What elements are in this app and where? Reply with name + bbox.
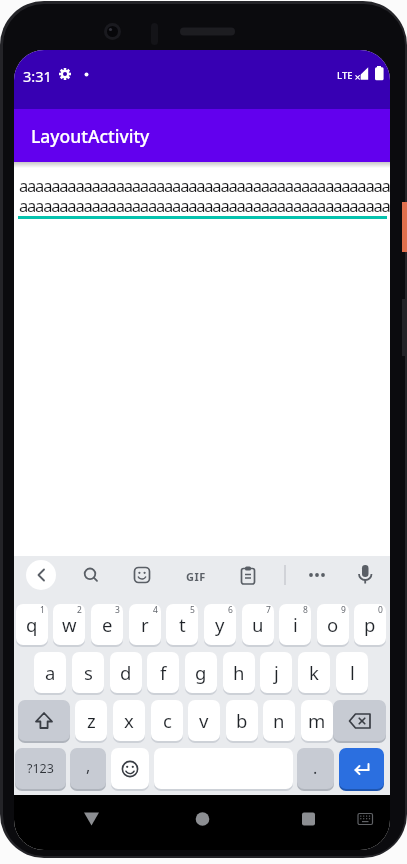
button[interactable]: , [70,748,106,789]
button[interactable]: b [226,700,258,741]
button[interactable]: u [242,604,274,645]
button[interactable] [73,801,109,837]
staticText: 3 [115,604,120,616]
button[interactable]: h [223,652,255,693]
staticText: r [141,612,149,637]
button[interactable] [14,162,390,272]
button[interactable]: f [147,652,179,693]
staticText: ?123 [27,760,54,777]
button[interactable] [290,801,326,837]
button[interactable]: . [297,748,334,789]
button[interactable]: ?123 [15,748,66,789]
button[interactable] [184,801,220,837]
button[interactable] [181,560,211,590]
staticText: 7 [266,604,271,616]
staticText: u [252,612,264,637]
staticText: 0 [378,604,383,616]
staticText: aaaaaaaaaaaaaaaaaaaaaaaaaaaaaaaaaaaaaaaa… [19,174,390,196]
staticText: w [62,612,77,637]
staticText: y [215,612,225,637]
staticText: 2 [77,604,82,616]
staticText: 3:31 [23,66,52,86]
staticText: m [308,708,326,733]
staticText: , [86,755,91,777]
button[interactable]: k [298,652,330,693]
button[interactable] [127,560,157,590]
staticText: c [163,708,172,733]
button[interactable]: q [16,604,48,645]
staticText: p [364,612,376,637]
staticText: i [293,612,298,637]
button[interactable]: d [110,652,142,693]
button[interactable] [333,700,386,741]
staticText: v [199,708,209,733]
button[interactable]: e [91,604,123,645]
staticText: b [236,708,248,733]
button[interactable]: g [185,652,217,693]
staticText: a [45,660,56,685]
button[interactable]: n [263,700,295,741]
button[interactable] [18,700,70,741]
staticText: q [26,612,38,637]
button[interactable]: o [317,604,349,645]
button[interactable]: y [204,604,236,645]
staticText: 4 [153,604,158,616]
staticText: d [120,660,132,685]
button[interactable]: l [336,652,368,693]
staticText: n [273,708,285,733]
button[interactable]: m [301,700,333,741]
button[interactable] [350,560,380,590]
staticText: aaaaaaaaaaaaaaaaaaaaaaaaaaaaaaaaaaaaaaaa… [19,194,390,216]
button[interactable] [302,560,332,590]
staticText: 6 [228,604,233,616]
button[interactable]: c [151,700,183,741]
button[interactable]: r [129,604,161,645]
staticText: 8 [303,604,308,616]
staticText: t [179,612,186,637]
button[interactable] [111,748,149,789]
button[interactable] [339,748,384,789]
staticText: 9 [341,604,346,616]
staticText: x [124,708,134,733]
button[interactable]: s [72,652,104,693]
button[interactable]: p [354,604,386,645]
staticText: z [87,708,96,733]
button[interactable] [76,560,106,590]
button[interactable]: t [166,604,198,645]
staticText: LayoutActivity [31,124,150,148]
staticText: f [160,660,167,685]
button[interactable]: i [279,604,311,645]
staticText: . [313,757,318,779]
button[interactable]: x [113,700,145,741]
button[interactable]: j [260,652,292,693]
staticText: k [309,660,319,685]
button[interactable]: w [53,604,85,645]
button[interactable] [347,801,383,837]
button[interactable] [233,560,263,590]
button[interactable] [26,560,56,590]
staticText: LTE [337,69,353,82]
staticText: o [327,612,339,637]
staticText: GIF [186,569,206,584]
staticText: 5 [190,604,195,616]
staticText: e [102,612,113,637]
staticText: l [350,660,355,685]
button[interactable]: z [75,700,107,741]
staticText: 1 [40,604,45,616]
staticText: j [274,660,279,685]
button[interactable]: a [34,652,66,693]
staticText: s [84,660,93,685]
staticText: g [195,660,207,685]
staticText: h [233,660,245,685]
button[interactable]: v [188,700,220,741]
